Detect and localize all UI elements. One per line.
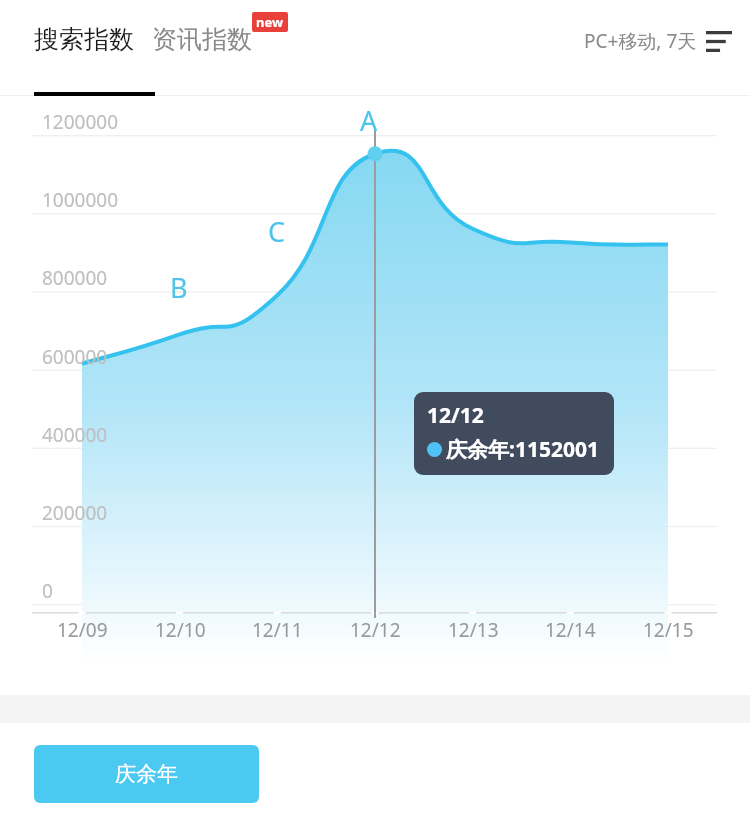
staticText: 12/12 <box>427 401 484 430</box>
staticText: 0 <box>42 578 53 604</box>
staticText: B <box>170 269 188 306</box>
staticText: A <box>360 102 378 139</box>
staticText: new <box>256 13 284 31</box>
staticText: 12/09 <box>57 617 108 643</box>
staticText: PC+移动, 7天 <box>584 28 697 54</box>
button[interactable]: 庆余年 <box>34 745 259 803</box>
staticText: 搜索指数 <box>34 24 134 55</box>
staticText: 12/10 <box>155 617 206 643</box>
staticText: 庆余年 <box>115 761 178 787</box>
staticText: 12/11 <box>252 617 303 643</box>
staticText: C <box>268 213 286 250</box>
staticText: 400000 <box>42 422 108 448</box>
button[interactable]: 搜索指数 <box>34 24 134 55</box>
staticText: 800000 <box>42 265 108 291</box>
staticText: 12/13 <box>448 617 499 643</box>
staticText: 资讯指数 <box>152 24 252 55</box>
staticText: 庆余年:1152001 <box>446 435 599 464</box>
staticText: 12/15 <box>643 617 694 643</box>
staticText: 1000000 <box>42 187 119 213</box>
button[interactable]: PC+移动, 7天 <box>584 28 732 54</box>
staticText: 600000 <box>42 344 108 370</box>
staticText: 1200000 <box>42 109 119 135</box>
staticText: 200000 <box>42 500 108 526</box>
staticText: 12/14 <box>545 617 596 643</box>
other: Filter options <box>706 31 732 52</box>
button[interactable]: 资讯指数 <box>152 24 288 55</box>
staticText: 12/12 <box>350 617 401 643</box>
